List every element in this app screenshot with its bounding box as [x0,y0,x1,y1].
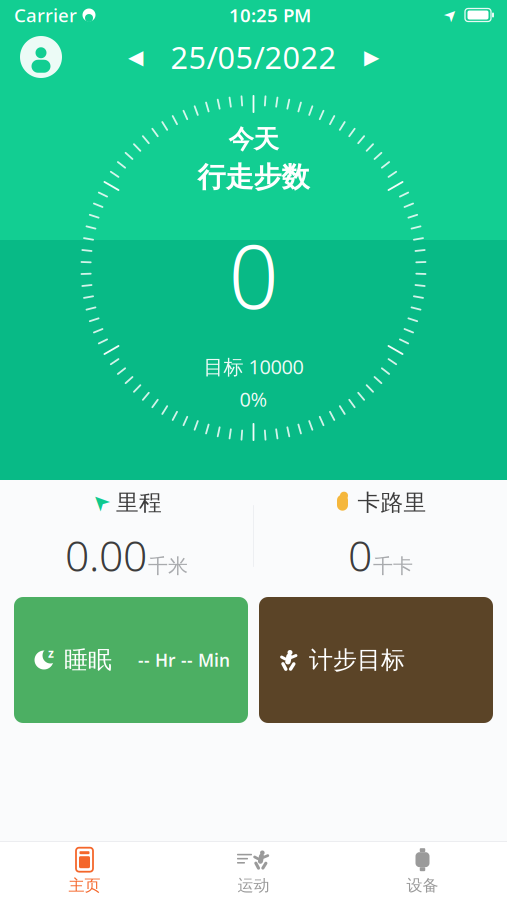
staticText: 设备 [406,876,438,895]
staticText: 今天 [228,124,278,155]
staticText: 0.00 [65,527,147,583]
staticText: Carrier [14,3,77,27]
button[interactable]: 设备 [338,842,507,900]
button[interactable]: z [14,597,248,723]
staticText: -- Hr -- Min [138,648,230,671]
staticText: 千米 [148,554,188,578]
staticText: 卡路里 [357,489,426,516]
staticText: 运动 [237,876,269,895]
button[interactable]: 主页 [0,842,169,900]
button[interactable]: 运动 [169,842,338,900]
staticText: 里程 [116,489,162,516]
staticText: 25/05/2022 [170,37,336,77]
button[interactable]: Next day [354,40,388,74]
staticText: 0 [228,216,278,333]
staticText: ◀ [128,46,143,68]
staticText: ▶ [364,46,379,68]
staticText: ➤ [444,6,457,24]
button[interactable]: 计步目标 [259,597,493,723]
staticText: 主页 [68,876,100,895]
staticText: z [48,645,54,661]
staticText: 睡眠 [64,645,112,675]
button[interactable]: ➤ [0,489,253,583]
button[interactable]: Profile [20,36,62,78]
staticText: ➤ [91,491,109,515]
button[interactable]: 卡路里 [254,489,507,583]
staticText: 计步目标 [309,645,405,675]
staticText: 0% [239,386,267,412]
button[interactable]: Previous day [118,40,152,74]
staticText: 目标 10000 [203,353,303,380]
staticText: 0 [348,527,372,583]
staticText: 千卡 [373,554,413,578]
staticText: 行走步数 [197,160,309,194]
staticText: 10:25 PM [229,3,311,27]
